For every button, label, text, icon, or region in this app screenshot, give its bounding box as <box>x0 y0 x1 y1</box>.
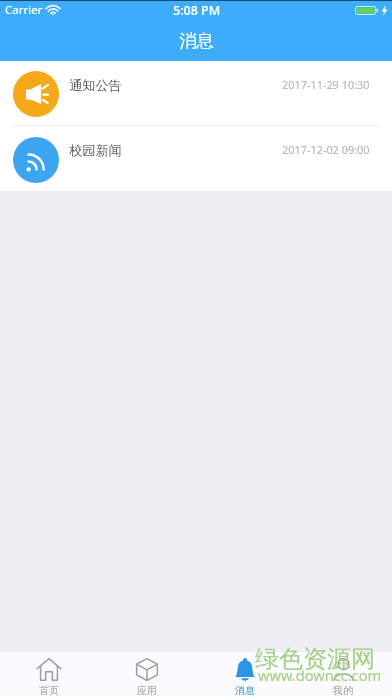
button[interactable]: 我的 <box>294 652 392 696</box>
staticText: 2017-12-02 09:00 <box>282 142 370 157</box>
button[interactable]: 消息 <box>196 652 294 696</box>
button[interactable]: 首页 <box>0 652 98 696</box>
staticText: 消息 <box>235 684 255 696</box>
button[interactable]: 应用 <box>98 652 196 696</box>
staticText: 绿色资源网 <box>255 644 375 674</box>
staticText: 通知公告 <box>69 77 122 94</box>
staticText: 校园新闻 <box>69 142 122 159</box>
staticText: Carrier <box>5 2 43 18</box>
staticText: 我的 <box>333 684 353 696</box>
staticText: 首页 <box>39 684 59 696</box>
button[interactable]: 校园新闻 <box>0 125 392 189</box>
button[interactable]: 通知公告 <box>0 61 392 125</box>
staticText: 2017-11-29 10:30 <box>282 77 370 92</box>
staticText: 5:08 PM <box>173 2 221 19</box>
staticText: 应用 <box>137 684 157 696</box>
staticText: 消息 <box>179 30 214 52</box>
staticText: www.downcc.com <box>258 665 382 685</box>
